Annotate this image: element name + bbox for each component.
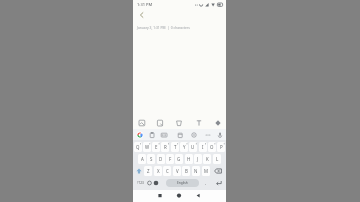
button[interactable]: H <box>185 154 193 164</box>
button[interactable]: K <box>203 154 211 164</box>
staticText: S <box>150 156 153 162</box>
button[interactable] <box>194 118 204 128</box>
button[interactable] <box>175 191 183 199</box>
button[interactable]: ?123 <box>134 178 146 188</box>
button[interactable]: A <box>138 154 146 164</box>
staticText: . <box>205 180 207 186</box>
button[interactable] <box>216 131 224 139</box>
staticText: B <box>185 168 188 174</box>
staticText: L <box>216 156 219 162</box>
button[interactable]: T <box>171 142 179 152</box>
button[interactable] <box>212 166 224 176</box>
button[interactable] <box>155 118 165 128</box>
button[interactable]: U <box>189 142 197 152</box>
staticText: J <box>197 156 199 162</box>
button[interactable] <box>204 131 212 139</box>
button[interactable] <box>146 178 153 188</box>
button[interactable] <box>156 191 164 199</box>
staticText: ?123 <box>137 181 144 185</box>
button[interactable] <box>134 166 144 176</box>
staticText: Z <box>147 168 150 174</box>
button[interactable] <box>148 131 156 139</box>
button[interactable]: Y <box>180 142 188 152</box>
staticText: W <box>145 144 150 150</box>
button[interactable]: V <box>173 166 181 176</box>
staticText: E <box>155 144 158 150</box>
staticText: T <box>174 144 177 150</box>
staticText: C <box>166 168 169 174</box>
staticText: O <box>210 144 214 150</box>
button[interactable]: F <box>166 154 174 164</box>
button[interactable]: D <box>157 154 165 164</box>
button[interactable]: N <box>192 166 200 176</box>
button[interactable]: W <box>143 142 151 152</box>
button[interactable] <box>137 10 146 19</box>
button[interactable] <box>190 131 198 139</box>
staticText: R <box>164 144 167 150</box>
staticText: D <box>159 156 163 162</box>
button[interactable] <box>174 118 184 128</box>
staticText: English <box>177 181 188 185</box>
button[interactable]: English <box>166 179 199 187</box>
staticText: I <box>202 144 204 150</box>
staticText: U <box>191 144 195 150</box>
button[interactable] <box>214 178 224 188</box>
staticText: N <box>194 168 198 174</box>
button[interactable]: E <box>152 142 160 152</box>
button[interactable]: G <box>175 154 183 164</box>
staticText: K <box>206 156 209 162</box>
staticText: A <box>141 156 144 162</box>
button[interactable]: B <box>182 166 190 176</box>
button[interactable] <box>213 118 223 128</box>
staticText: H <box>187 156 191 162</box>
staticText: G <box>177 156 181 162</box>
button[interactable] <box>176 131 184 139</box>
button[interactable] <box>152 178 160 188</box>
button[interactable]: O <box>208 142 216 152</box>
button[interactable] <box>160 131 168 139</box>
staticText: M <box>204 168 208 174</box>
staticText: P <box>220 144 223 150</box>
button[interactable]: I <box>199 142 207 152</box>
button[interactable] <box>194 191 202 199</box>
staticText: F <box>169 156 172 162</box>
button[interactable]: X <box>154 166 162 176</box>
button[interactable] <box>137 118 147 128</box>
button[interactable]: J <box>194 154 202 164</box>
button[interactable]: S <box>147 154 155 164</box>
button[interactable]: L <box>213 154 221 164</box>
button[interactable]: C <box>163 166 171 176</box>
button[interactable]: M <box>202 166 210 176</box>
staticText: V <box>176 168 179 174</box>
button[interactable]: R <box>161 142 169 152</box>
button[interactable] <box>136 131 144 139</box>
staticText: Y <box>183 144 186 150</box>
staticText: January 3, 1:31 PM | 0 characters <box>137 25 190 29</box>
staticText: 1:31 PM <box>137 2 153 7</box>
staticText: X <box>157 168 160 174</box>
button[interactable]: Q <box>134 142 142 152</box>
button[interactable]: Z <box>144 166 152 176</box>
staticText: Q <box>136 144 140 150</box>
button[interactable]: . <box>202 178 209 188</box>
button[interactable]: P <box>217 142 225 152</box>
